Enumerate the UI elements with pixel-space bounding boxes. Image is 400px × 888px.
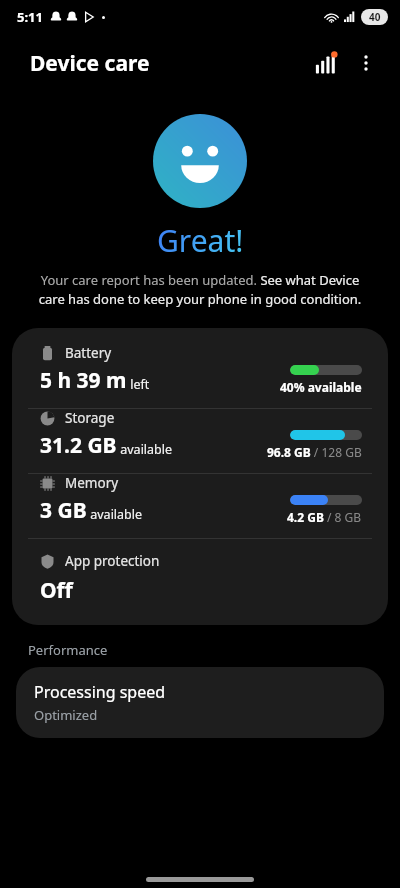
- button[interactable]: Storage: [12, 409, 388, 460]
- staticText: Memory: [65, 474, 119, 492]
- staticText: Device care: [30, 49, 150, 78]
- staticText: Performance: [28, 641, 108, 659]
- staticText: 5 h 39 m: [40, 366, 127, 395]
- button[interactable]: Battery: [12, 344, 388, 395]
- button[interactable]: Memory: [12, 474, 388, 525]
- staticText: Storage: [65, 409, 115, 427]
- staticText: Battery: [65, 344, 112, 362]
- button[interactable]: More options: [348, 45, 384, 81]
- staticText: App protection: [65, 552, 160, 570]
- button[interactable]: App protection: [12, 539, 388, 605]
- staticText: left: [127, 376, 150, 393]
- staticText: 4.2 GB / 8 GB: [287, 509, 362, 525]
- staticText: Processing speed: [34, 681, 166, 703]
- staticText: available: [117, 441, 173, 458]
- staticText: 40: [369, 10, 381, 24]
- staticText: Optimized: [34, 706, 98, 724]
- staticText: 31.2 GB: [40, 431, 117, 460]
- staticText: Great!: [157, 220, 244, 261]
- staticText: Off: [40, 576, 73, 605]
- staticText: 96.8 GB / 128 GB: [267, 444, 362, 460]
- staticText: available: [87, 506, 143, 523]
- button[interactable]: Processing speed: [16, 667, 384, 738]
- button[interactable]: Care report history: [308, 45, 344, 81]
- staticText: 3 GB: [40, 496, 87, 525]
- staticText: Your care report has been updated. See w…: [28, 271, 372, 308]
- staticText: 40% available: [280, 379, 362, 395]
- staticText: 5:11: [17, 8, 43, 26]
